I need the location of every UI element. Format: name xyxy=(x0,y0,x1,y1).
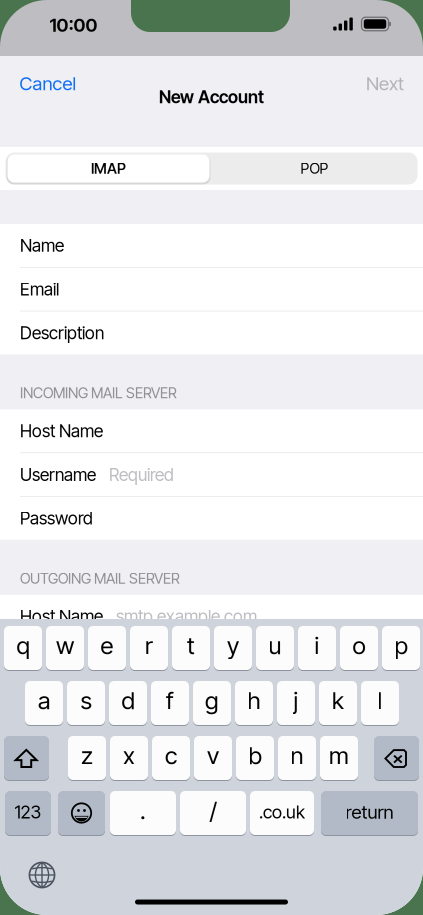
staticText: o xyxy=(352,631,365,660)
button[interactable] xyxy=(130,626,168,670)
staticText: Host Name xyxy=(20,606,103,627)
button[interactable] xyxy=(110,791,176,835)
button[interactable]: Name xyxy=(0,224,423,268)
button[interactable] xyxy=(25,681,63,725)
staticText: c xyxy=(165,741,177,770)
staticText: t xyxy=(187,631,195,660)
staticText: / xyxy=(209,796,216,825)
staticText: p xyxy=(394,631,407,660)
button[interactable]: Email xyxy=(0,268,423,311)
staticText: u xyxy=(268,631,281,660)
staticText: Email xyxy=(20,279,59,300)
button[interactable]: Shift xyxy=(4,736,49,780)
button[interactable]: Delete xyxy=(374,736,419,780)
staticText: j xyxy=(293,686,298,715)
staticText: s xyxy=(80,686,91,715)
button[interactable] xyxy=(236,736,274,780)
staticText: smtp.example.com xyxy=(116,606,257,627)
button[interactable] xyxy=(110,736,148,780)
staticText: n xyxy=(290,741,303,770)
button[interactable] xyxy=(67,681,105,725)
button[interactable] xyxy=(109,681,147,725)
staticText: Username xyxy=(20,464,96,485)
staticText: New Account xyxy=(159,86,264,107)
staticText: b xyxy=(248,741,261,770)
staticText: k xyxy=(332,686,344,715)
button[interactable]: Next keyboard xyxy=(23,856,61,894)
button[interactable]: Description xyxy=(0,311,423,354)
button[interactable] xyxy=(194,736,232,780)
staticText: r xyxy=(145,631,153,660)
staticText: IMAP xyxy=(91,160,126,177)
staticText: g xyxy=(205,686,219,715)
button[interactable] xyxy=(278,736,316,780)
button[interactable] xyxy=(256,626,294,670)
button[interactable] xyxy=(277,681,315,725)
staticText: Password xyxy=(20,508,93,529)
button[interactable] xyxy=(320,736,358,780)
button[interactable] xyxy=(5,791,51,835)
staticText: d xyxy=(121,686,134,715)
staticText: z xyxy=(81,741,93,770)
staticText: 10:00 xyxy=(49,14,97,36)
staticText: i xyxy=(314,631,319,660)
staticText: q xyxy=(16,631,29,660)
button[interactable] xyxy=(382,626,420,670)
button[interactable] xyxy=(172,626,210,670)
button[interactable] xyxy=(340,626,378,670)
button[interactable] xyxy=(235,681,273,725)
staticText: l xyxy=(377,686,382,715)
button[interactable]: Username xyxy=(0,453,423,497)
staticText: h xyxy=(247,686,260,715)
staticText: Description xyxy=(20,322,104,343)
staticText: . xyxy=(140,796,146,825)
button[interactable]: Password xyxy=(0,497,423,540)
staticText: f xyxy=(166,686,174,715)
staticText: y xyxy=(227,631,239,660)
button[interactable]: Host Name xyxy=(0,595,423,638)
button[interactable] xyxy=(321,791,418,835)
button[interactable] xyxy=(68,736,106,780)
staticText: OUTGOING MAIL SERVER xyxy=(20,570,180,587)
button[interactable]: POP xyxy=(211,152,417,184)
staticText: INCOMING MAIL SERVER xyxy=(20,384,177,402)
staticText: 123 xyxy=(14,801,41,823)
staticText: e xyxy=(100,631,113,660)
button[interactable] xyxy=(151,681,189,725)
button[interactable] xyxy=(298,626,336,670)
button[interactable] xyxy=(214,626,252,670)
button[interactable] xyxy=(319,681,357,725)
staticText: w xyxy=(56,631,74,660)
staticText: v xyxy=(207,741,219,770)
staticText: m xyxy=(329,741,349,770)
button[interactable]: Cancel xyxy=(9,63,86,104)
button[interactable]: Host Name xyxy=(0,409,423,453)
staticText: Host Name xyxy=(20,420,103,441)
staticText: .co.uk xyxy=(259,801,305,823)
button[interactable]: Emoji xyxy=(58,791,105,835)
button[interactable] xyxy=(193,681,231,725)
staticText: POP xyxy=(300,160,328,177)
button[interactable] xyxy=(152,736,190,780)
button[interactable] xyxy=(46,626,84,670)
staticText: Required xyxy=(109,464,174,485)
button[interactable]: IMAP xyxy=(5,152,211,184)
button[interactable] xyxy=(250,791,314,835)
staticText: x xyxy=(123,741,135,770)
staticText: a xyxy=(38,686,50,715)
button[interactable]: Next xyxy=(356,63,414,104)
staticText: Cancel xyxy=(19,72,76,95)
staticText: return xyxy=(345,801,393,823)
staticText: Name xyxy=(20,235,64,256)
button[interactable] xyxy=(4,626,42,670)
button[interactable] xyxy=(361,681,399,725)
button[interactable] xyxy=(180,791,246,835)
staticText: Next xyxy=(366,72,404,95)
button[interactable] xyxy=(88,626,126,670)
